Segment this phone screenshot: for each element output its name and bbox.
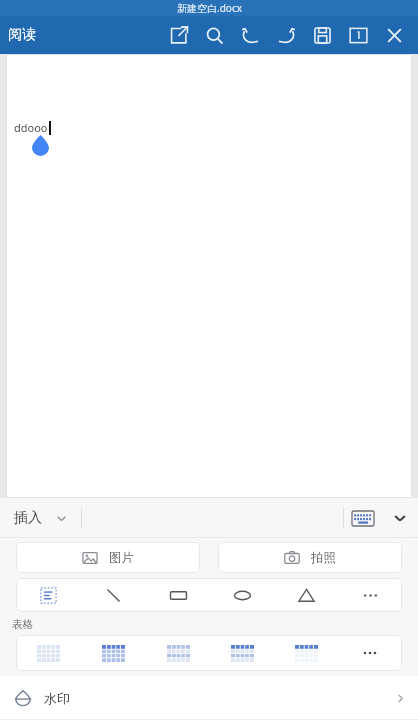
staticText: 表格 <box>12 618 33 631</box>
staticText: 拍照 <box>311 550 336 566</box>
button[interactable]: 拍照 <box>218 542 402 573</box>
button[interactable]: Rectangle <box>146 578 210 612</box>
staticText: 图片 <box>109 550 134 566</box>
button[interactable]: Share <box>160 16 196 54</box>
button[interactable]: Table style 5 <box>274 635 338 671</box>
button[interactable]: 图片 <box>16 542 200 573</box>
button[interactable]: Text box <box>16 578 81 612</box>
button[interactable]: Pages <box>340 16 376 54</box>
staticText: 新建空白.docx <box>177 1 242 15</box>
button[interactable]: Table style 1 <box>16 635 81 671</box>
button[interactable]: Table style 2 <box>81 635 146 671</box>
button[interactable]: Save <box>304 16 340 54</box>
button[interactable]: Search <box>196 16 232 54</box>
button[interactable]: Keyboard <box>344 498 382 538</box>
button[interactable]: 插入 <box>0 503 77 533</box>
button[interactable]: Ellipse <box>210 578 274 612</box>
button[interactable]: More shapes <box>338 578 402 612</box>
button[interactable]: Collapse <box>382 498 418 538</box>
button[interactable]: Table style 3 <box>146 635 210 671</box>
button[interactable]: Close <box>376 16 412 54</box>
button[interactable]: 阅读 <box>0 20 44 50</box>
button[interactable]: Triangle <box>274 578 338 612</box>
staticText: ddooo <box>14 120 48 135</box>
staticText: 插入 <box>14 509 42 527</box>
button[interactable]: Undo <box>232 16 268 54</box>
button[interactable]: 水印 <box>0 676 418 720</box>
button[interactable]: Table style 4 <box>210 635 274 671</box>
button[interactable]: Redo <box>268 16 304 54</box>
button[interactable]: Line <box>81 578 146 612</box>
staticText: 水印 <box>44 690 70 706</box>
button[interactable]: More tables <box>338 635 402 671</box>
